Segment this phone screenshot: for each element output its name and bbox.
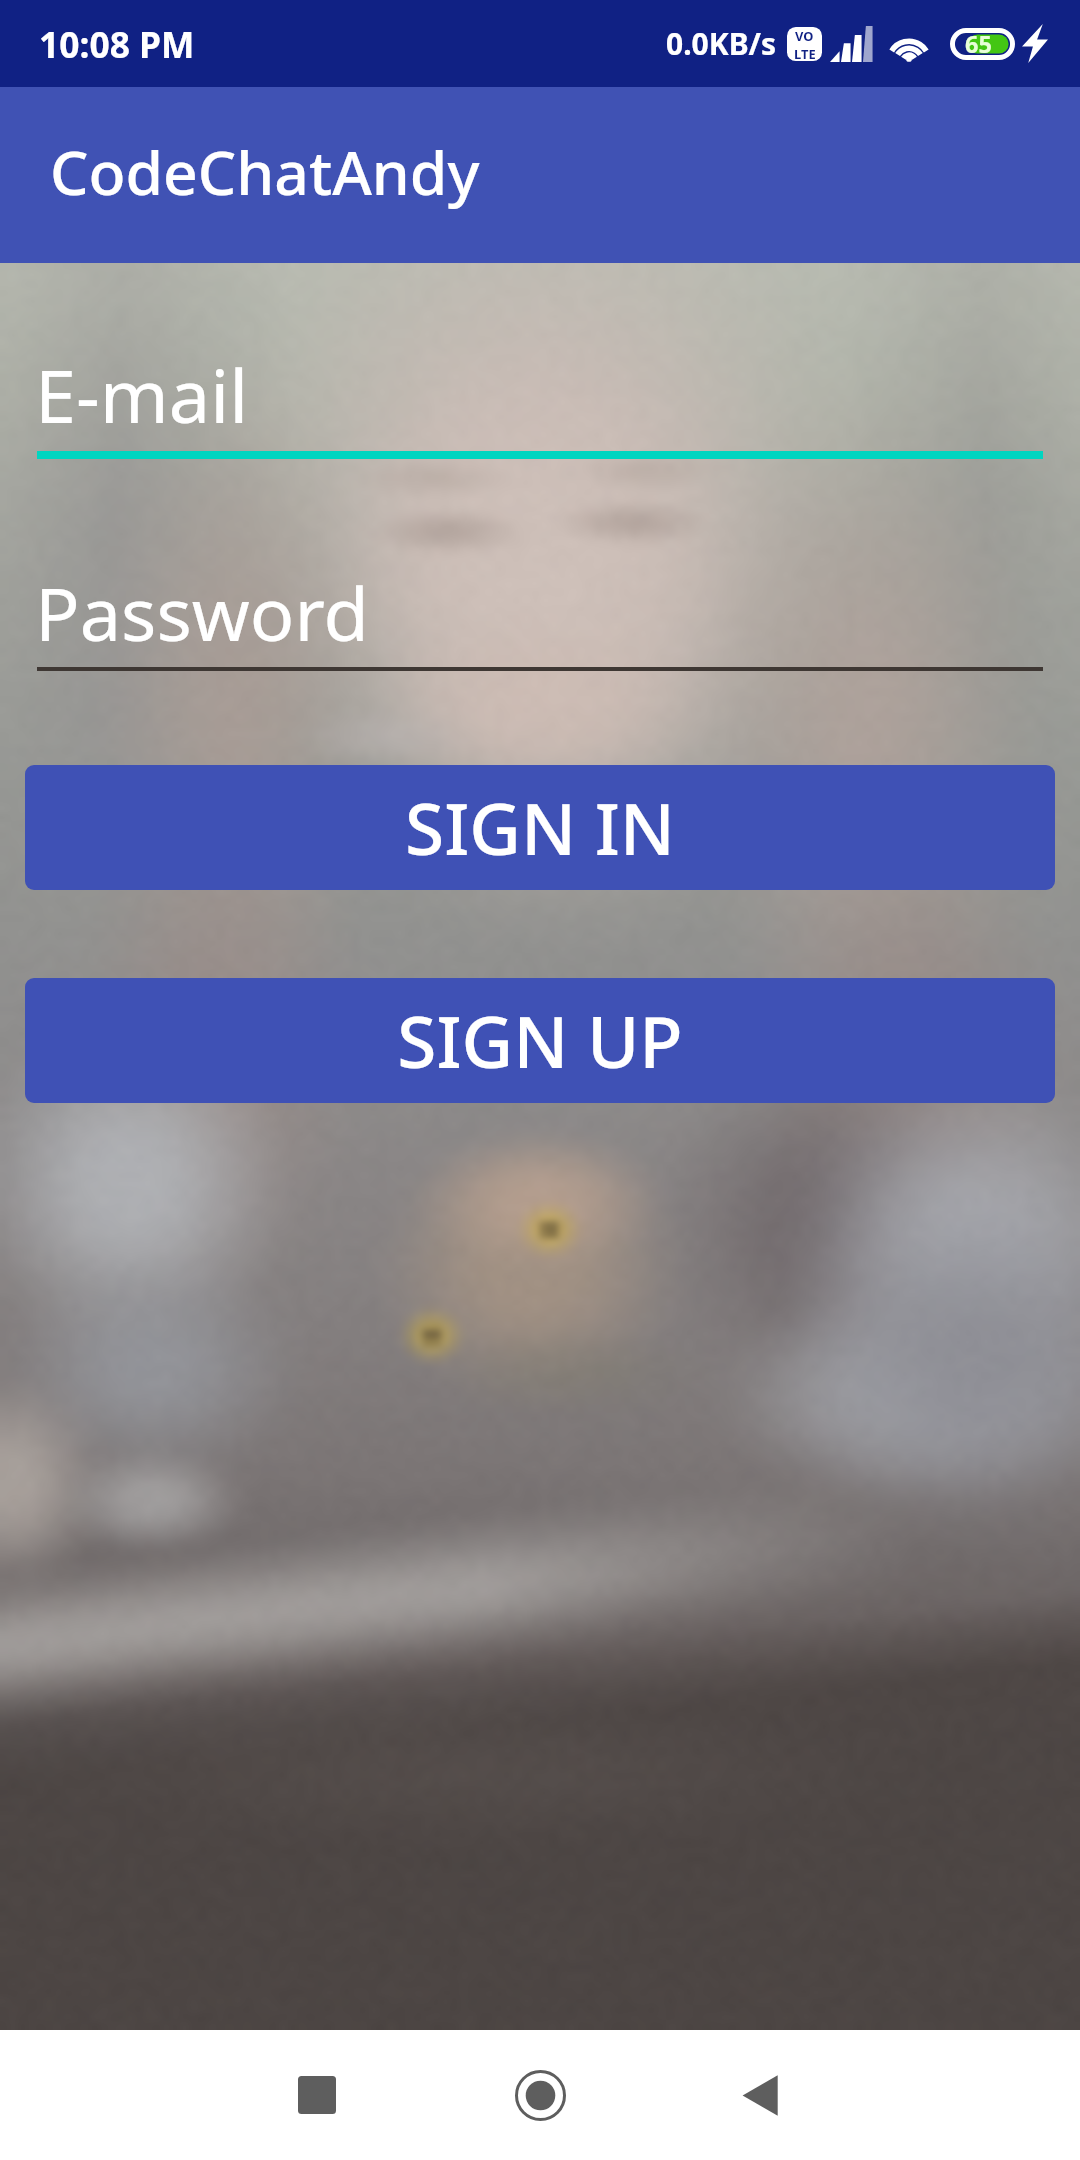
button[interactable]: Home [468, 2030, 612, 2160]
button[interactable]: Recents [245, 2030, 389, 2160]
button[interactable]: Back [689, 2030, 833, 2160]
staticText: CodeChatAndy [50, 130, 480, 213]
staticText: SIGN IN [405, 779, 675, 876]
staticText: E-mail [35, 344, 249, 445]
staticText: VO [795, 27, 814, 45]
staticText: 65 [965, 28, 992, 60]
staticText: 0.0KB/s [666, 23, 777, 64]
staticText: 10:08 PM [39, 20, 195, 68]
staticText: Password [35, 562, 369, 663]
staticText: LTE [794, 45, 816, 61]
staticText: SIGN UP [397, 992, 683, 1089]
button[interactable]: SIGN IN [25, 765, 1055, 890]
button[interactable]: SIGN UP [25, 978, 1055, 1103]
